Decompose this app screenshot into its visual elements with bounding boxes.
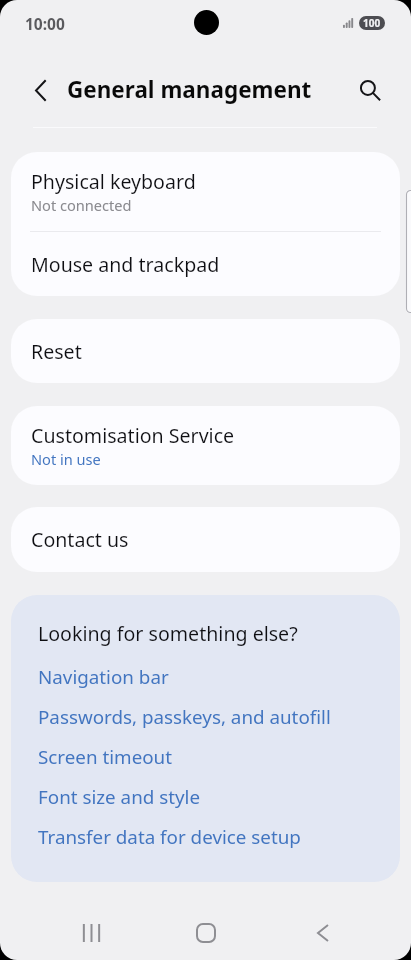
button[interactable]: Home — [147, 905, 264, 960]
button[interactable]: Customisation Service — [11, 406, 400, 485]
staticText: Transfer data for device setup — [38, 824, 301, 850]
button[interactable]: Navigation bar — [11, 657, 400, 697]
staticText: General management — [67, 74, 312, 105]
button[interactable]: Physical keyboard — [11, 152, 400, 231]
staticText: Screen timeout — [38, 744, 173, 770]
button[interactable]: Recent apps — [30, 905, 147, 960]
button[interactable]: Transfer data for device setup — [11, 817, 400, 857]
button[interactable]: Screen timeout — [11, 737, 400, 777]
button[interactable]: Font size and style — [11, 777, 400, 817]
staticText: Contact us — [31, 526, 129, 553]
staticText: 100 — [363, 16, 381, 30]
button[interactable]: Passwords, passkeys, and autofill — [11, 697, 400, 737]
staticText: Reset — [31, 338, 82, 365]
button[interactable]: Back — [264, 905, 381, 960]
staticText: Navigation bar — [38, 664, 169, 690]
button[interactable]: Back — [20, 67, 60, 107]
button[interactable]: Mouse and trackpad — [11, 232, 400, 296]
staticText: Font size and style — [38, 784, 201, 810]
button[interactable]: Contact us — [11, 507, 400, 572]
staticText: Mouse and trackpad — [31, 251, 220, 278]
staticText: Customisation Service — [31, 422, 235, 449]
button[interactable]: Reset — [11, 319, 400, 383]
staticText: Not connected — [31, 195, 132, 215]
staticText: Physical keyboard — [31, 168, 196, 195]
staticText: 10:00 — [25, 13, 65, 34]
staticText: Not in use — [31, 449, 101, 469]
button[interactable]: Search — [351, 67, 391, 107]
staticText: Looking for something else? — [38, 620, 298, 647]
staticText: Passwords, passkeys, and autofill — [38, 704, 331, 730]
